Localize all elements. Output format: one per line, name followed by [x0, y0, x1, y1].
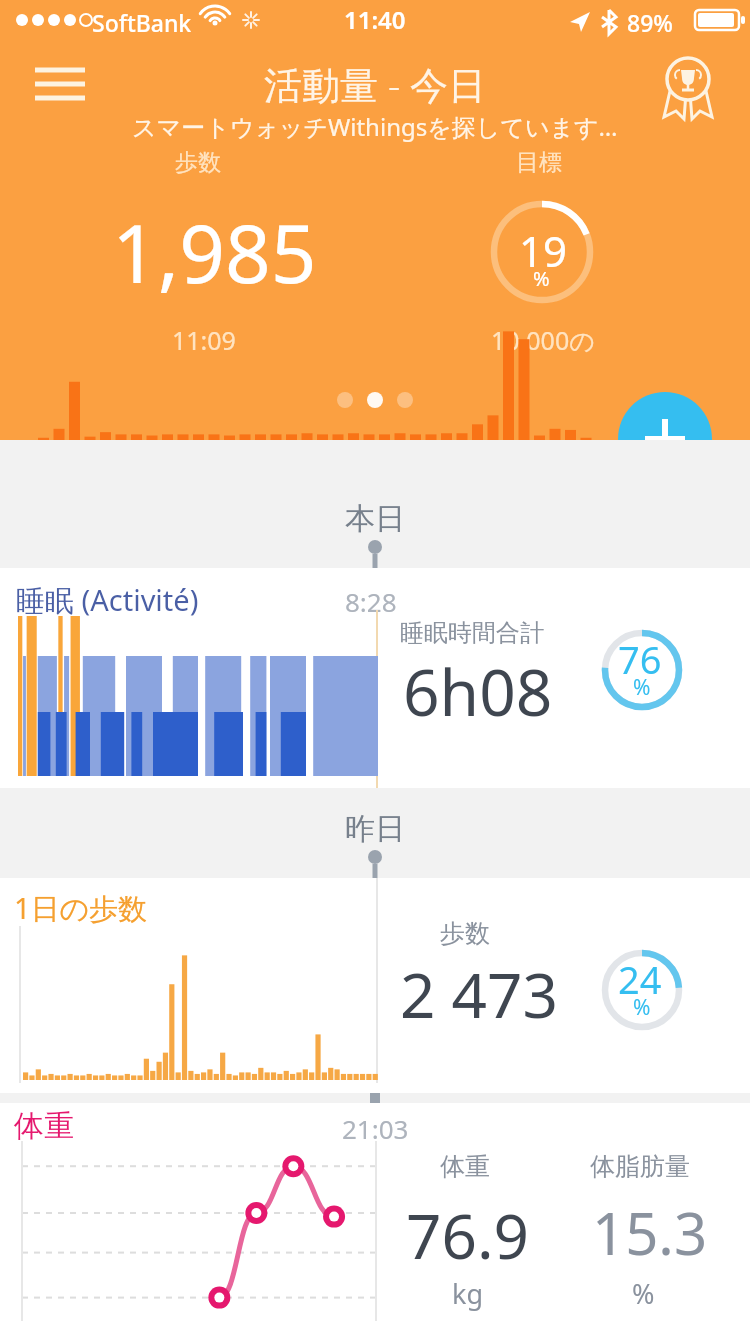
staticText: 睡眠 (Activité): [16, 580, 199, 620]
staticText: kg: [452, 1275, 484, 1312]
staticText: 76.9: [406, 1193, 530, 1277]
staticText: 76: [618, 633, 662, 685]
button[interactable]: Add measurement: [618, 392, 712, 486]
staticText: %: [633, 993, 651, 1022]
staticText: 11:40: [344, 3, 406, 36]
staticText: 昨日: [345, 810, 405, 848]
staticText: 体重: [14, 1107, 74, 1145]
staticText: %: [633, 673, 651, 702]
staticText: 歩数: [175, 148, 221, 177]
staticText: 10,000の: [491, 323, 595, 357]
staticText: 11:09: [172, 323, 236, 357]
staticText: 本日: [345, 500, 405, 538]
staticText: スマートウォッチWithingsを探しています…: [132, 110, 618, 143]
staticText: 目標: [516, 148, 562, 177]
button[interactable]: 睡眠 (Activité): [0, 568, 750, 788]
staticText: %: [533, 265, 550, 292]
staticText: 歩数: [440, 918, 490, 949]
staticText: 89%: [627, 7, 673, 38]
staticText: 8:28: [345, 584, 397, 619]
staticText: 1日の歩数: [14, 888, 148, 928]
button[interactable]: 1日の歩数: [0, 878, 750, 1093]
staticText: 体脂肪量: [590, 1151, 690, 1182]
button[interactable]: Achievements: [652, 48, 724, 120]
staticText: 体重: [440, 1151, 490, 1182]
staticText: 24: [618, 953, 662, 1005]
button[interactable]: 体重: [0, 1093, 750, 1333]
staticText: SoftBank: [92, 7, 192, 38]
staticText: 睡眠時間合計: [400, 618, 544, 648]
staticText: 活動量 - 今日: [264, 58, 486, 110]
staticText: 21:03: [342, 1111, 409, 1146]
staticText: 2 473: [400, 952, 558, 1036]
button[interactable]: Menu: [22, 52, 98, 108]
staticText: %: [632, 1275, 655, 1312]
staticText: 15.3: [592, 1193, 708, 1272]
staticText: 6h08: [403, 648, 553, 735]
staticText: 1,985: [112, 197, 317, 306]
staticText: 19: [519, 222, 568, 279]
